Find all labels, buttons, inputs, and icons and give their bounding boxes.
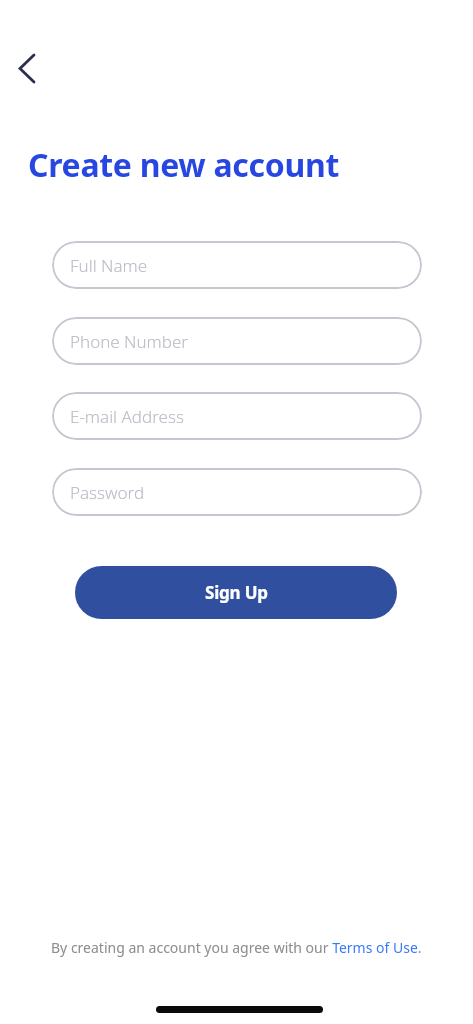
- staticText: Password: [70, 481, 145, 504]
- staticText: E-mail Address: [70, 405, 184, 428]
- button[interactable]: [9, 50, 45, 86]
- button[interactable]: Password: [52, 468, 422, 516]
- button[interactable]: Sign Up: [75, 566, 397, 619]
- staticText: Sign Up: [205, 581, 268, 604]
- staticText: Full Name: [70, 254, 148, 277]
- button[interactable]: By creating an account you agree with ou…: [0, 938, 473, 957]
- button[interactable]: Full Name: [52, 241, 422, 289]
- staticText: Create new account: [28, 143, 340, 187]
- staticText: By creating an account you agree with ou…: [51, 938, 422, 957]
- staticText: Phone Number: [70, 330, 189, 353]
- button[interactable]: Phone Number: [52, 317, 422, 365]
- button[interactable]: E-mail Address: [52, 392, 422, 440]
